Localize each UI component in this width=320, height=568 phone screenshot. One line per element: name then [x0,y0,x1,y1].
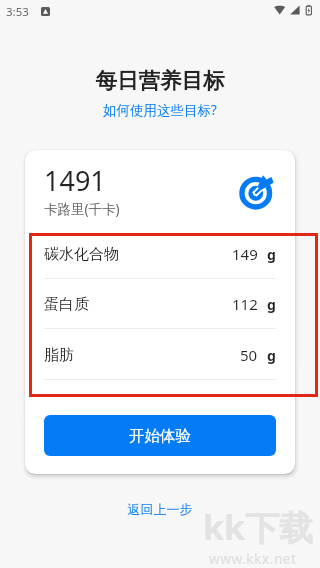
button[interactable]: 蛋白质 [25,279,295,329]
staticText: 149 [232,244,258,264]
staticText: 脂肪 [44,346,74,365]
staticText: 每日营养目标 [0,67,320,94]
button[interactable]: 开始体验 [44,415,276,456]
staticText: www.kkx.net [209,550,297,568]
staticText: 112 [232,294,258,314]
staticText: g [267,346,276,365]
staticText: g [267,245,276,264]
button[interactable]: 如何使用这些目标? [0,101,320,119]
staticText: 卡路里(千卡) [44,200,120,218]
staticText: 3:53 [6,4,29,20]
other: Goal [239,175,276,212]
staticText: 碳水化合物 [44,245,119,264]
staticText: 50 [240,345,258,365]
staticText: 开始体验 [129,426,191,446]
button[interactable]: 脂肪 [25,330,295,380]
staticText: kk下载 [203,504,314,550]
staticText: 蛋白质 [44,295,89,314]
staticText: 1491 [44,162,106,199]
button[interactable]: 碳水化合物 [25,229,295,279]
staticText: g [267,295,276,314]
button[interactable]: 返回上一步 [0,501,320,517]
